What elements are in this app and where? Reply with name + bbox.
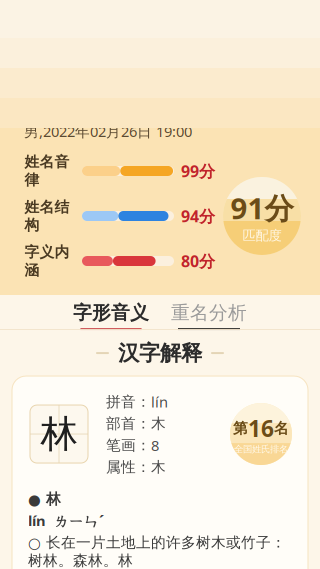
staticText: 第 xyxy=(233,419,248,437)
staticText: 匹配度 xyxy=(242,227,281,244)
staticText: 木 xyxy=(151,414,166,432)
staticText: 阳 xyxy=(85,67,121,112)
staticText: 部首： xyxy=(106,414,151,432)
button[interactable]: 重名分析 xyxy=(171,293,247,331)
staticText: ● 林 xyxy=(28,490,61,508)
staticText: 字义内涵 xyxy=(24,243,69,279)
staticText: 80分 xyxy=(181,250,215,272)
staticText: 全国姓氏排名 xyxy=(234,443,288,455)
staticText: 名 xyxy=(274,419,289,437)
staticText: lín ㄌㄧㄣˊ xyxy=(28,511,104,531)
staticText: 男,2022年02月26日 19:00 xyxy=(24,121,192,141)
staticText: 林 xyxy=(28,67,64,112)
staticText: ○ 长在一片土地上的许多树木或竹子：树林。森林。林 xyxy=(28,534,286,569)
staticText: 拼音： xyxy=(106,393,151,411)
staticText: 林 xyxy=(40,411,77,457)
staticText: 重名分析 xyxy=(171,301,247,324)
staticText: 91分 xyxy=(230,188,293,227)
staticText: 94分 xyxy=(181,205,215,227)
staticText: 笔画： xyxy=(106,436,151,454)
staticText: 修 xyxy=(142,67,178,112)
staticText: 汉字解释 xyxy=(118,340,202,366)
staticText: lín xyxy=(151,392,168,411)
staticText: 16 xyxy=(248,413,274,443)
staticText: 字形音义 xyxy=(73,301,149,324)
staticText: 木 xyxy=(151,458,166,476)
staticText: 99分 xyxy=(181,160,215,181)
button[interactable]: 字形音义 xyxy=(73,293,149,331)
staticText: 8 xyxy=(151,435,159,455)
staticText: 姓名结构 xyxy=(24,198,69,234)
staticText: ★ xyxy=(272,53,297,85)
staticText: 姓名音律 xyxy=(24,153,69,189)
staticText: 收藏 xyxy=(273,87,297,102)
button[interactable]: 收藏 xyxy=(264,55,306,101)
staticText: 属性： xyxy=(106,458,151,476)
